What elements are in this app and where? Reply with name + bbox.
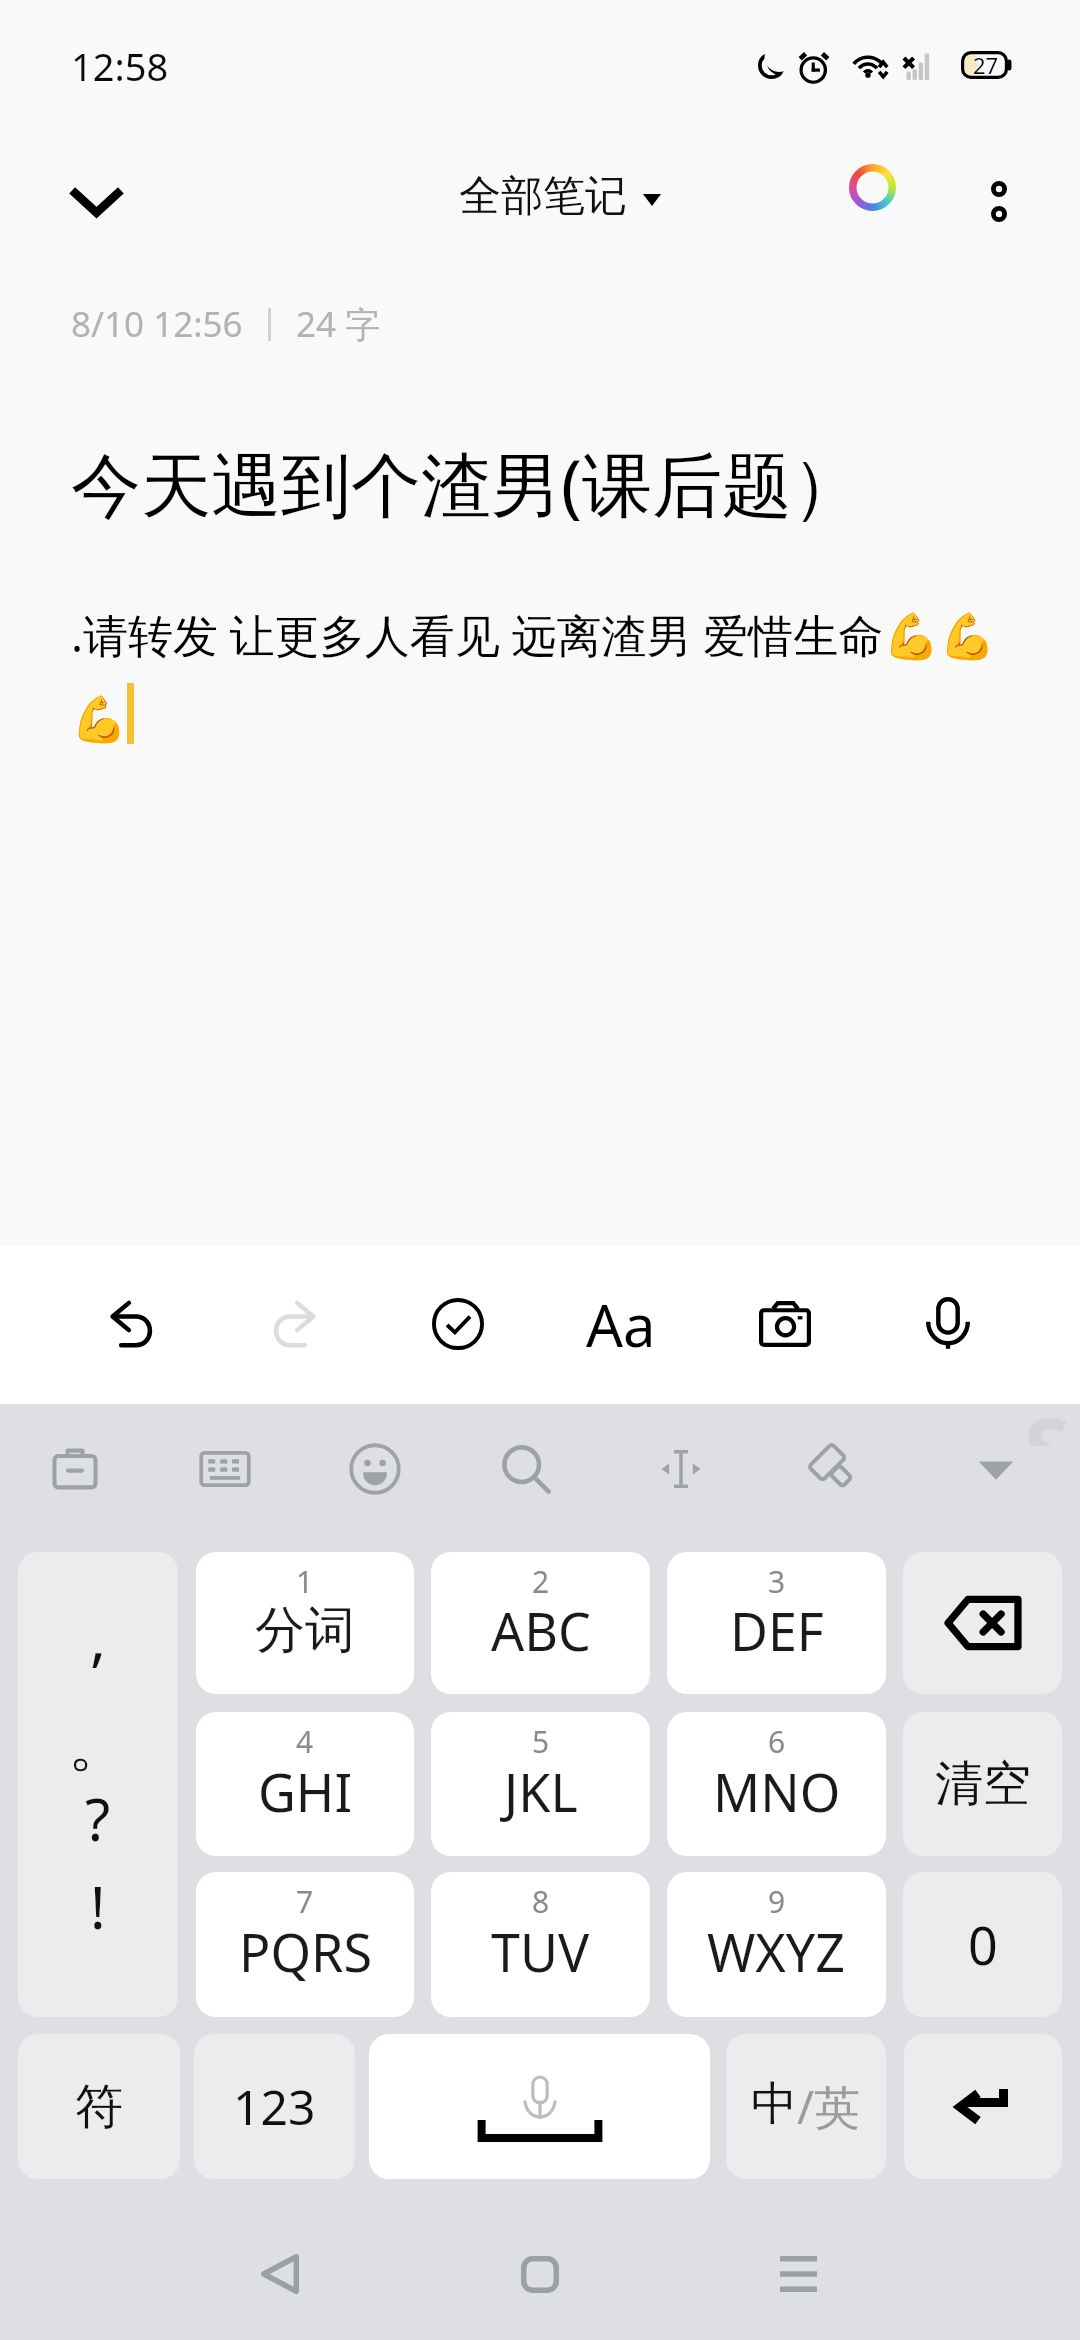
staticText: 1 bbox=[296, 1561, 314, 1602]
staticText: 8/10 12:56 bbox=[71, 300, 243, 348]
staticText: , bbox=[90, 1596, 107, 1676]
button[interactable]: 3 bbox=[667, 1552, 886, 1694]
button[interactable]: Theme color bbox=[817, 132, 927, 242]
staticText: 12:58 bbox=[71, 40, 169, 92]
button[interactable]: 9 bbox=[667, 1872, 886, 2017]
button[interactable]: Redo bbox=[234, 1264, 354, 1384]
button[interactable]: Search bbox=[471, 1414, 581, 1524]
staticText: Aa bbox=[586, 1285, 656, 1364]
button[interactable]: Undo bbox=[71, 1264, 191, 1384]
button[interactable]: Language bbox=[726, 2034, 886, 2179]
staticText: MNO bbox=[713, 1756, 841, 1827]
staticText: 27 bbox=[973, 50, 999, 78]
staticText: 全部笔记 bbox=[459, 170, 627, 223]
staticText: TUV bbox=[491, 1916, 590, 1987]
button[interactable]: 7 bbox=[196, 1872, 414, 2017]
button[interactable]: 5 bbox=[431, 1712, 650, 1856]
button[interactable]: Back bbox=[225, 2219, 335, 2329]
button[interactable]: Keyboard layout bbox=[170, 1414, 280, 1524]
button[interactable]: Emoji bbox=[320, 1414, 430, 1524]
staticText: 123 bbox=[233, 2074, 316, 2139]
button[interactable]: Theme bbox=[779, 1414, 889, 1524]
button[interactable]: More options bbox=[944, 146, 1054, 256]
button[interactable]: 全部笔记 bbox=[452, 164, 668, 229]
staticText: GHI bbox=[258, 1756, 353, 1827]
staticText: .请转发 让更多人看见 远离渣男 爱惜生命💪💪💪 bbox=[71, 604, 1011, 746]
button[interactable]: Checklist bbox=[398, 1264, 518, 1384]
button[interactable]: Space bbox=[369, 2034, 710, 2179]
staticText: S bbox=[1020, 1388, 1066, 1446]
button[interactable]: Collapse bbox=[36, 143, 156, 263]
staticText: 符 bbox=[75, 2077, 123, 2137]
staticText: 4 bbox=[296, 1721, 314, 1762]
staticText: PQRS bbox=[239, 1916, 372, 1987]
button[interactable]: 1 bbox=[196, 1552, 414, 1694]
button[interactable]: Voice input bbox=[888, 1264, 1008, 1384]
button[interactable]: Clear bbox=[903, 1712, 1062, 1856]
staticText: DEF bbox=[730, 1595, 824, 1666]
staticText: 24 字 bbox=[296, 300, 381, 348]
staticText: JKL bbox=[504, 1756, 578, 1827]
button[interactable]: 2 bbox=[431, 1552, 650, 1694]
staticText: 7 bbox=[296, 1881, 314, 1922]
button[interactable]: Symbols bbox=[18, 2034, 180, 2179]
staticText: /英 bbox=[797, 2075, 861, 2138]
staticText: 2 bbox=[532, 1561, 550, 1602]
staticText: 6 bbox=[768, 1721, 786, 1762]
button[interactable]: Move cursor bbox=[626, 1414, 736, 1524]
staticText: ABC bbox=[491, 1595, 591, 1666]
staticText: 清空 bbox=[935, 1754, 1031, 1814]
staticText: WXYZ bbox=[707, 1916, 846, 1987]
button[interactable]: 6 bbox=[667, 1712, 886, 1856]
button[interactable]: Hide keyboard bbox=[941, 1414, 1051, 1524]
button[interactable]: Numbers bbox=[194, 2034, 355, 2179]
staticText: 。 bbox=[68, 1707, 128, 1783]
staticText: ! bbox=[90, 1867, 106, 1946]
staticText: 0 bbox=[968, 1909, 998, 1980]
button[interactable]: Camera bbox=[725, 1264, 845, 1384]
button[interactable]: Enter bbox=[904, 2034, 1062, 2179]
button[interactable]: 4 bbox=[196, 1712, 414, 1856]
button[interactable]: Zero bbox=[903, 1872, 1062, 2017]
staticText: 中 bbox=[751, 2075, 797, 2133]
button[interactable]: Punctuation bbox=[18, 1552, 178, 2017]
button[interactable]: Text format bbox=[561, 1264, 681, 1384]
staticText: 5 bbox=[532, 1721, 550, 1762]
staticText: 8 bbox=[532, 1881, 550, 1922]
staticText: 今天遇到个渣男(课后题） bbox=[71, 435, 862, 531]
staticText: ? bbox=[85, 1779, 111, 1858]
button[interactable]: Backspace bbox=[903, 1552, 1062, 1694]
button[interactable]: Recent apps bbox=[743, 2219, 853, 2329]
staticText: 9 bbox=[768, 1881, 786, 1922]
staticText: 3 bbox=[768, 1561, 786, 1602]
button[interactable]: Clipboard bbox=[20, 1414, 130, 1524]
staticText: 分词 bbox=[255, 1599, 355, 1662]
button[interactable]: 8 bbox=[431, 1872, 650, 2017]
button[interactable]: Home bbox=[485, 2219, 595, 2329]
